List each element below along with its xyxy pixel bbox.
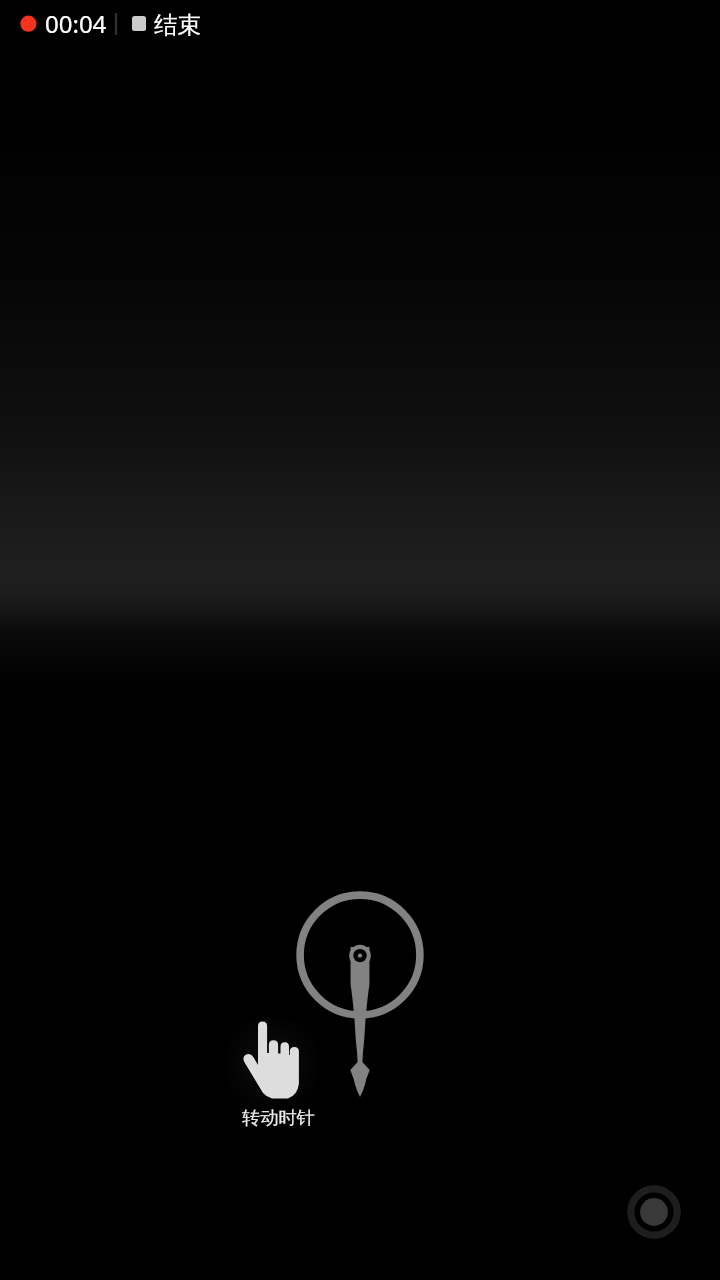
- button[interactable]: 转动时针: [238, 1104, 320, 1130]
- staticText: 00:04: [45, 7, 107, 40]
- staticText: 转动时针: [242, 1106, 315, 1129]
- button[interactable]: Record: [627, 1185, 681, 1239]
- staticText: 结束: [154, 10, 201, 40]
- button[interactable]: 结束: [132, 12, 201, 42]
